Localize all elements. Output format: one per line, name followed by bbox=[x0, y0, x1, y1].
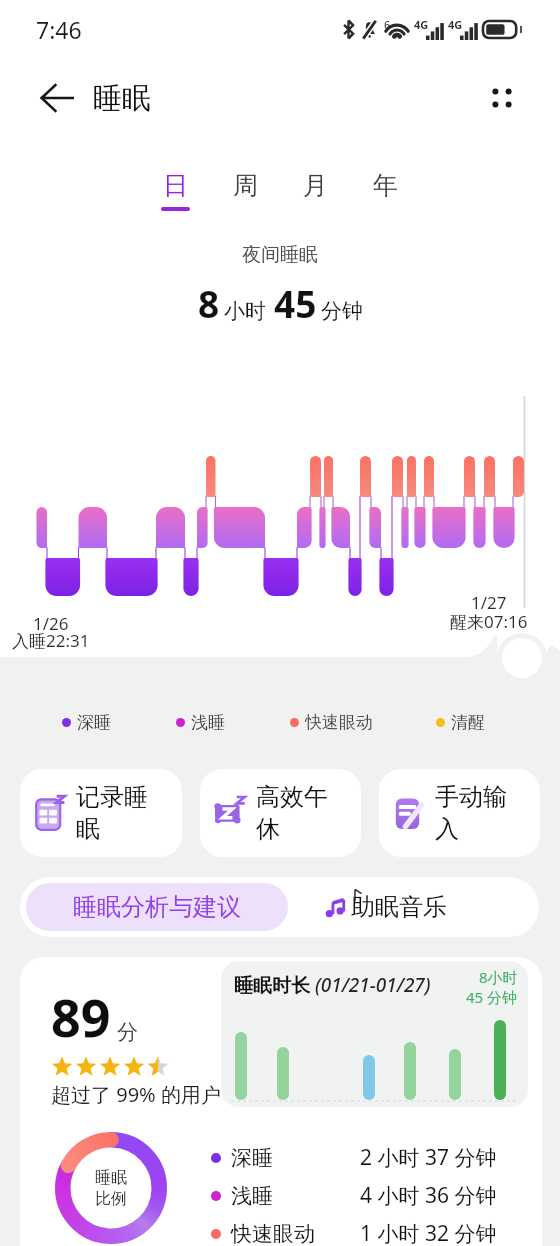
staticText: 8小时 bbox=[479, 967, 518, 987]
staticText: 分 bbox=[117, 1019, 138, 1045]
button[interactable]: 手动输入 bbox=[379, 769, 540, 857]
staticText: 小时 bbox=[224, 298, 266, 324]
button[interactable]: 睡眠分析与建议 bbox=[26, 883, 288, 931]
staticText: 入睡22:31 bbox=[12, 629, 90, 652]
staticText: 快速眼动 bbox=[231, 1221, 315, 1246]
staticText: 浅睡 bbox=[231, 1183, 273, 1209]
staticText: 45 bbox=[274, 278, 317, 328]
button[interactable]: 记录睡眠 bbox=[20, 769, 182, 857]
staticText: 周 bbox=[233, 170, 258, 201]
staticText: 深睡 bbox=[77, 712, 111, 733]
staticText: 睡眠分析与建议 bbox=[73, 892, 241, 922]
staticText: 8 bbox=[198, 278, 220, 328]
staticText: 4G bbox=[414, 17, 429, 32]
button[interactable]: More options bbox=[478, 74, 526, 122]
staticText: 手动输入 bbox=[435, 782, 513, 844]
staticText: 6 bbox=[384, 17, 391, 32]
button[interactable]: 年 bbox=[350, 170, 420, 220]
staticText: 4 小时 36 分钟 bbox=[360, 1181, 497, 1210]
staticText: 超过了 99% 的用户 bbox=[51, 1081, 221, 1108]
staticText: (01/21-01/27) bbox=[315, 972, 431, 998]
staticText: 1/27 bbox=[471, 591, 507, 614]
button[interactable]: 周 bbox=[210, 170, 280, 220]
button[interactable]: 快速眼动 bbox=[211, 1219, 497, 1246]
staticText: 浅睡 bbox=[191, 712, 225, 733]
button[interactable]: 深睡 bbox=[62, 712, 111, 733]
button[interactable]: 睡眠时长 bbox=[221, 961, 528, 1107]
staticText: 日 bbox=[163, 170, 188, 201]
staticText: 年 bbox=[373, 170, 398, 201]
staticText: 助眠音乐 bbox=[351, 892, 447, 922]
staticText: 醒来07:16 bbox=[450, 610, 528, 633]
staticText: 清醒 bbox=[451, 712, 485, 733]
staticText: 7:46 bbox=[36, 14, 82, 45]
staticText: 高效午休 bbox=[256, 782, 334, 844]
staticText: 45 分钟 bbox=[466, 987, 518, 1007]
button[interactable]: 月 bbox=[280, 170, 350, 220]
button[interactable]: 清醒 bbox=[436, 712, 485, 733]
staticText: 睡眠 bbox=[93, 80, 151, 117]
button[interactable]: Sleep detail bbox=[502, 638, 542, 678]
staticText: 快速眼动 bbox=[305, 712, 373, 733]
staticText: 深睡 bbox=[231, 1145, 273, 1171]
staticText: 比例 bbox=[95, 1189, 127, 1209]
button[interactable]: 浅睡 bbox=[211, 1181, 497, 1210]
staticText: 1 小时 32 分钟 bbox=[360, 1219, 497, 1246]
staticText: 夜间睡眠 bbox=[242, 243, 318, 267]
button[interactable]: 浅睡 bbox=[176, 712, 225, 733]
button[interactable]: 快速眼动 bbox=[290, 712, 373, 733]
button[interactable]: 高效午休 bbox=[200, 769, 361, 857]
staticText: 睡眠 bbox=[95, 1168, 127, 1188]
staticText: 记录睡眠 bbox=[76, 782, 154, 844]
button[interactable]: Sleep ratio bbox=[55, 1132, 167, 1244]
button[interactable]: 日 bbox=[140, 170, 210, 220]
staticText: 4G bbox=[448, 17, 463, 32]
staticText: 2 小时 37 分钟 bbox=[360, 1143, 497, 1172]
staticText: 89 bbox=[51, 981, 111, 1052]
button[interactable]: 助眠音乐 bbox=[325, 883, 447, 931]
button[interactable]: Back bbox=[30, 71, 84, 125]
staticText: 分钟 bbox=[321, 298, 363, 324]
staticText: 月 bbox=[303, 170, 328, 201]
button[interactable]: 深睡 bbox=[211, 1143, 497, 1172]
staticText: 睡眠时长 bbox=[234, 974, 310, 998]
staticText: 1/26 bbox=[33, 612, 69, 635]
